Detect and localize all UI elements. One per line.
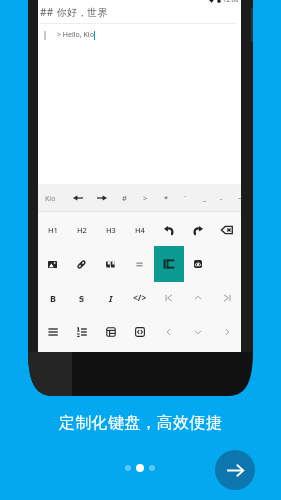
staticText: I xyxy=(109,292,113,304)
button[interactable]: Quote xyxy=(96,247,125,281)
button[interactable]: Move right xyxy=(95,192,109,203)
button[interactable]: B xyxy=(38,281,67,315)
staticText: H4 xyxy=(135,225,145,235)
staticText: ~ xyxy=(238,193,243,203)
staticText: H1 xyxy=(48,225,58,235)
button[interactable]: Down xyxy=(183,315,212,349)
staticText: S xyxy=(79,292,84,304)
staticText: ## 你好，世界 xyxy=(40,5,108,19)
button[interactable]: Backspace xyxy=(212,213,241,247)
button[interactable]: * xyxy=(159,188,173,207)
staticText: 12:00 xyxy=(223,0,239,4)
button[interactable]: ` xyxy=(178,188,192,207)
staticText: H3 xyxy=(106,225,116,235)
button[interactable]: Abbreviation xyxy=(183,247,212,281)
button[interactable]: ~ xyxy=(233,188,247,207)
staticText: B xyxy=(50,292,56,304)
button[interactable]: Code block xyxy=(154,247,183,281)
staticText: H2 xyxy=(77,225,87,235)
button[interactable]: </> xyxy=(125,281,154,315)
button[interactable]: Move left xyxy=(71,192,85,203)
button[interactable]: Insert table xyxy=(96,315,125,349)
staticText: ` xyxy=(184,193,187,203)
staticText: 定制化键盘，高效便捷 xyxy=(0,413,281,433)
button[interactable]: _ xyxy=(198,188,212,207)
button[interactable]: Left xyxy=(154,315,183,349)
button[interactable]: H2 xyxy=(67,213,96,247)
staticText: _ xyxy=(203,193,207,203)
staticText: </> xyxy=(133,292,147,304)
button[interactable]: S xyxy=(67,281,96,315)
button[interactable]: Insert image xyxy=(38,247,67,281)
button[interactable]: Up xyxy=(183,281,212,315)
button[interactable]: I xyxy=(96,281,125,315)
button[interactable]: H1 xyxy=(38,213,67,247)
button[interactable]: H4 xyxy=(125,213,154,247)
button[interactable]: Line start xyxy=(154,281,183,315)
staticText: > xyxy=(143,193,148,203)
button[interactable]: H3 xyxy=(96,213,125,247)
button[interactable]: Right xyxy=(212,315,241,349)
button[interactable]: Numbered list xyxy=(67,315,96,349)
button[interactable]: Redo xyxy=(183,213,212,247)
button[interactable]: Undo xyxy=(154,213,183,247)
button[interactable]: Next page xyxy=(215,450,255,490)
button[interactable]: # xyxy=(117,188,131,207)
button[interactable]: Line end xyxy=(212,281,241,315)
button[interactable]: Inline code xyxy=(125,247,154,281)
button[interactable]: > xyxy=(138,188,152,207)
button[interactable]: - xyxy=(214,188,228,207)
staticText: Kio xyxy=(45,194,56,204)
button[interactable]: Insert link xyxy=(67,247,96,281)
staticText: > Hello, Kio xyxy=(57,30,94,40)
staticText: * xyxy=(164,193,169,203)
button[interactable]: Bullet list xyxy=(38,315,67,349)
staticText: # xyxy=(122,193,127,203)
button[interactable]: Insert snippet xyxy=(125,315,154,349)
staticText: - xyxy=(220,193,223,203)
